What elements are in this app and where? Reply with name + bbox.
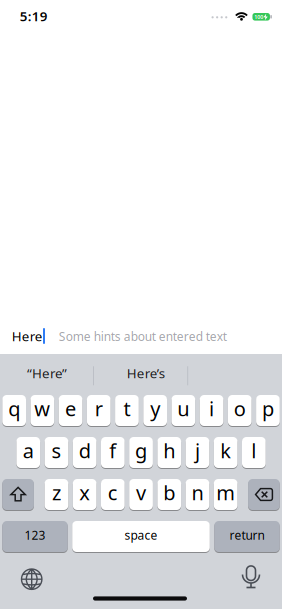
button[interactable]: j bbox=[186, 437, 209, 468]
button[interactable]: “Here” bbox=[1, 354, 93, 392]
staticText: return bbox=[229, 527, 264, 543]
staticText: p bbox=[262, 395, 274, 422]
button[interactable]: q bbox=[2, 395, 26, 426]
button[interactable]: m bbox=[214, 479, 237, 510]
staticText: Here’s bbox=[127, 364, 165, 382]
staticText: t bbox=[123, 395, 130, 422]
button[interactable]: u bbox=[171, 395, 195, 426]
button[interactable]: n bbox=[186, 479, 209, 510]
button[interactable]: t bbox=[115, 395, 139, 426]
button[interactable]: Here’s bbox=[100, 354, 192, 392]
staticText: Here bbox=[12, 327, 43, 345]
button[interactable]: Dictate bbox=[229, 558, 273, 598]
button[interactable]: s bbox=[45, 437, 68, 468]
button[interactable]: z bbox=[45, 479, 68, 510]
button[interactable]: Next keyboard bbox=[10, 559, 54, 599]
button[interactable]: y bbox=[143, 395, 167, 426]
staticText: e bbox=[65, 395, 76, 422]
staticText: i bbox=[209, 395, 214, 422]
staticText: n bbox=[191, 479, 203, 506]
staticText: s bbox=[51, 437, 61, 464]
staticText: u bbox=[177, 395, 189, 422]
button[interactable]: b bbox=[157, 479, 181, 510]
staticText: m bbox=[216, 479, 235, 506]
staticText: h bbox=[163, 437, 175, 464]
staticText: c bbox=[108, 479, 118, 506]
button[interactable]: i bbox=[200, 395, 223, 426]
button[interactable]: v bbox=[129, 479, 153, 510]
staticText: Some hints about entered text bbox=[59, 328, 227, 344]
button[interactable]: h bbox=[157, 437, 181, 468]
button[interactable]: c bbox=[101, 479, 125, 510]
staticText: “Here” bbox=[27, 364, 67, 382]
staticText: 5:19 bbox=[20, 7, 48, 25]
button[interactable]: l bbox=[242, 437, 266, 468]
staticText: j bbox=[195, 437, 200, 464]
staticText: v bbox=[136, 479, 146, 506]
button[interactable]: k bbox=[214, 437, 237, 468]
button[interactable]: Shift bbox=[2, 479, 34, 510]
staticText: 123 bbox=[24, 527, 45, 543]
button[interactable]: 123 bbox=[2, 521, 68, 552]
staticText: l bbox=[251, 437, 256, 464]
staticText: w bbox=[34, 395, 50, 422]
staticText: g bbox=[135, 437, 147, 464]
staticText: 100 bbox=[254, 13, 263, 20]
button[interactable]: space bbox=[72, 521, 210, 552]
staticText: q bbox=[8, 395, 20, 422]
staticText: b bbox=[163, 479, 175, 506]
button[interactable]: Delete bbox=[248, 479, 280, 510]
staticText: z bbox=[52, 479, 61, 506]
button[interactable]: p bbox=[256, 395, 280, 426]
button[interactable]: e bbox=[59, 395, 82, 426]
button[interactable]: return bbox=[214, 521, 280, 552]
button[interactable]: w bbox=[30, 395, 54, 426]
button[interactable]: d bbox=[73, 437, 96, 468]
staticText: space bbox=[124, 527, 157, 543]
staticText: y bbox=[150, 395, 160, 422]
staticText: d bbox=[79, 437, 91, 464]
button[interactable]: o bbox=[228, 395, 252, 426]
button[interactable]: g bbox=[129, 437, 153, 468]
button[interactable]: x bbox=[73, 479, 96, 510]
button[interactable]: a bbox=[16, 437, 40, 468]
staticText: a bbox=[23, 437, 34, 464]
staticText: k bbox=[220, 437, 231, 464]
staticText: o bbox=[234, 395, 246, 422]
button[interactable]: f bbox=[101, 437, 125, 468]
button[interactable]: r bbox=[87, 395, 111, 426]
button[interactable]: Text field bbox=[0, 318, 282, 354]
staticText: r bbox=[95, 395, 103, 422]
staticText: f bbox=[109, 437, 116, 464]
staticText: x bbox=[79, 479, 90, 506]
